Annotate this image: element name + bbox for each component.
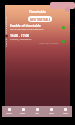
staticText: 16:00 - 17:00 xyxy=(10,34,30,38)
staticText: Swipe left to delete xyxy=(27,42,70,45)
staticText: Tap on the card to see more info xyxy=(10,28,44,31)
staticText: Stats xyxy=(49,112,54,115)
button[interactable]: More xyxy=(58,106,72,117)
staticText: More xyxy=(63,112,68,115)
button[interactable]: Add xyxy=(30,106,44,117)
staticText: Timetable xyxy=(5,9,70,14)
button[interactable]: Stats xyxy=(44,106,58,117)
staticText: NEW TIMETABLE xyxy=(30,18,51,21)
button[interactable]: Home xyxy=(2,106,16,117)
button[interactable]: Close xyxy=(65,7,70,12)
button[interactable]: Enable of timetable xyxy=(10,24,50,41)
staticText: Enable of timetable xyxy=(10,24,42,28)
staticText: Week xyxy=(20,112,26,115)
button[interactable]: Notification xyxy=(50,2,75,9)
button[interactable]: Week xyxy=(16,106,30,117)
staticText: Monday, Wednesday xyxy=(10,38,32,41)
button[interactable]: NEW TIMETABLE xyxy=(28,16,52,22)
staticText: Add xyxy=(35,112,39,115)
staticText: Home xyxy=(6,112,12,115)
